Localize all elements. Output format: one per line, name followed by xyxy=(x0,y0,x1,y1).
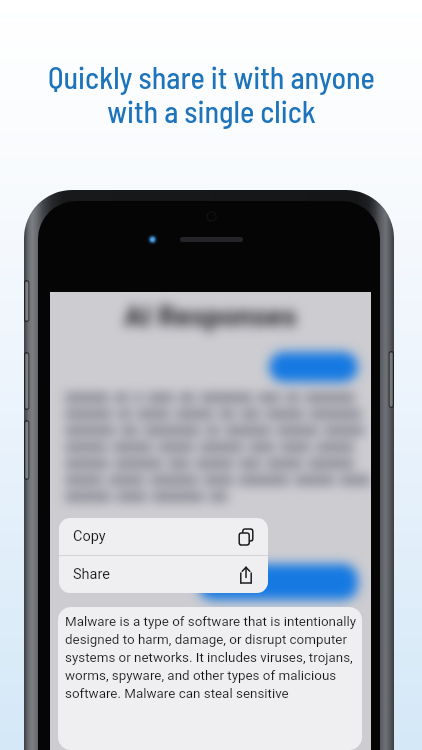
staticText: Malware is a type of software that is in… xyxy=(65,614,360,702)
other: Copy xyxy=(236,527,256,547)
other: Share xyxy=(236,565,256,585)
staticText: Share xyxy=(73,566,110,583)
staticText: AI Responses xyxy=(124,300,297,333)
staticText: Copy xyxy=(73,528,106,545)
button[interactable]: Copy xyxy=(59,518,268,555)
staticText: Quickly share it with anyone with a sing… xyxy=(48,59,375,129)
button[interactable]: Share xyxy=(59,556,268,593)
